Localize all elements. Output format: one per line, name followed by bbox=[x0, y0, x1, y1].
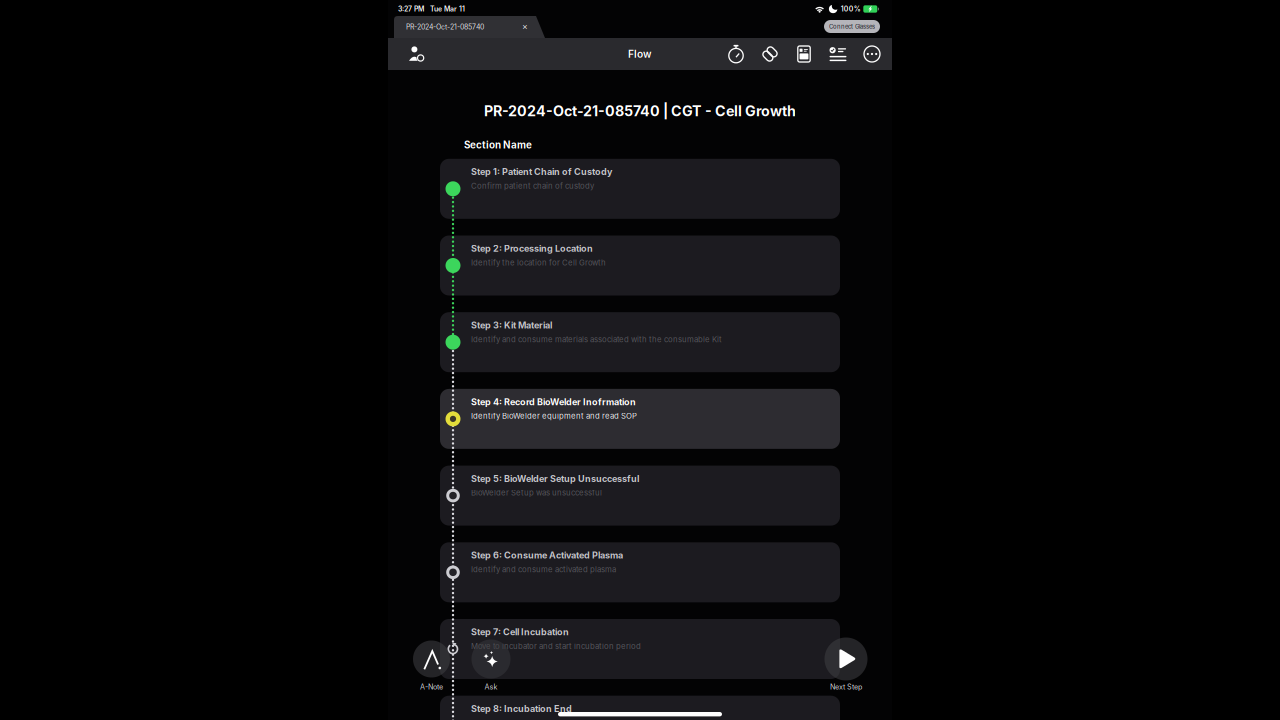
staticText: Identify BioWelder equipment and read SO… bbox=[471, 411, 637, 421]
staticText: Step 8: Incubation End bbox=[471, 703, 572, 714]
button[interactable]: Ask bbox=[445, 637, 537, 693]
button[interactable]: Connect Glasses bbox=[824, 20, 880, 33]
staticText: PR-2024-Oct-21-085740 | CGT - Cell Growt… bbox=[484, 102, 796, 120]
staticText: Next Step bbox=[830, 683, 862, 691]
staticText: Step 1: Patient Chain of Custody bbox=[471, 166, 612, 177]
button[interactable]: Links bbox=[753, 38, 787, 70]
button[interactable]: PR-2024-Oct-21-085740 bbox=[394, 16, 545, 38]
staticText: Step 3: Kit Material bbox=[471, 320, 552, 331]
button[interactable]: A-Note bbox=[385, 637, 477, 693]
staticText: A-Note bbox=[420, 683, 443, 691]
button[interactable]: Timer bbox=[719, 38, 753, 70]
staticText: PR-2024-Oct-21-085740 bbox=[406, 23, 484, 31]
staticText: Flow bbox=[628, 48, 652, 60]
button[interactable]: Attachments bbox=[787, 38, 821, 70]
button[interactable]: Assign user bbox=[402, 38, 432, 70]
staticText: Step 5: BioWelder Setup Unsuccessful bbox=[471, 473, 639, 484]
staticText: Identify the location for Cell Growth bbox=[471, 258, 606, 267]
staticText: Step 4: Record BioWelder Inofrmation bbox=[471, 396, 636, 407]
button[interactable]: Step 8: Incubation End bbox=[440, 696, 840, 720]
staticText: Ask bbox=[484, 683, 497, 691]
button[interactable]: Step 4: Record BioWelder Inofrmation bbox=[440, 389, 840, 449]
staticText: Step 2: Processing Location bbox=[471, 243, 593, 254]
staticText: Identify and consume activated plasma bbox=[471, 565, 616, 574]
button[interactable]: More bbox=[855, 38, 889, 70]
staticText: Connect Glasses bbox=[829, 23, 875, 30]
staticText: ✕ bbox=[522, 23, 528, 31]
button[interactable]: Step 5: BioWelder Setup Unsuccessful bbox=[440, 466, 840, 526]
staticText: Section Name bbox=[464, 139, 532, 151]
button[interactable]: Step 6: Consume Activated Plasma bbox=[440, 542, 840, 602]
button[interactable]: Step 2: Processing Location bbox=[440, 235, 840, 295]
staticText: 100% bbox=[841, 5, 861, 13]
staticText: BioWelder Setup was unsuccessful bbox=[471, 488, 602, 497]
staticText: Step 7: Cell Incubation bbox=[471, 626, 569, 637]
staticText: Step 6: Consume Activated Plasma bbox=[471, 550, 623, 561]
button[interactable]: Step 3: Kit Material bbox=[440, 312, 840, 372]
staticText: Confirm patient chain of custody bbox=[471, 181, 594, 191]
button[interactable]: Checklist bbox=[821, 38, 855, 70]
staticText: Move to incubator and start incubation p… bbox=[471, 641, 641, 651]
button[interactable]: Step 1: Patient Chain of Custody bbox=[440, 159, 840, 219]
staticText: Tue Mar 11 bbox=[430, 5, 465, 13]
button[interactable]: Next Step bbox=[800, 637, 892, 693]
staticText: 3:27 PM bbox=[398, 5, 424, 13]
staticText: Identify and consume materials associate… bbox=[471, 335, 722, 344]
button[interactable]: Step 7: Cell Incubation bbox=[440, 619, 840, 679]
